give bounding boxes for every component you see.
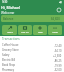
staticText: -32.00 [54,68,62,72]
staticText: ▴▮ [59,1,62,4]
staticText: -54.10 [54,49,62,53]
staticText: Grocery Store [2,48,19,52]
button[interactable]: Top up [18,25,32,35]
button[interactable]: Bills [33,25,47,35]
button[interactable]: Salary [0,53,64,58]
staticText: -12.40 [54,44,62,48]
button[interactable]: Balance [1,15,64,22]
staticText: Balance [3,17,14,21]
button[interactable]: Coffee House [0,43,64,48]
staticText: 9:30 [2,0,8,4]
staticText: Salary [2,53,10,57]
button[interactable]: Send [2,25,17,35]
staticText: Book Shop [2,63,16,67]
staticText: Electric Bill [2,58,16,62]
button[interactable]: Notifications [56,7,61,12]
staticText: Coffee House [2,43,19,47]
staticText: Bills [38,31,43,34]
staticText: More [52,31,58,34]
staticText: -86.25 [54,59,62,63]
staticText: Pharmacy [2,68,15,72]
staticText: Send [7,31,13,34]
staticText: Top up [21,31,29,34]
staticText: Welcome [1,11,15,15]
staticText: +2,300 [53,54,62,58]
staticText: Hi, Michael [1,5,20,10]
button[interactable]: Pharmacy [0,68,64,72]
button[interactable]: Electric Bill [0,58,64,63]
button[interactable]: More [48,25,62,35]
staticText: -19.99 [54,64,62,68]
staticText: $4,820 [51,17,60,21]
staticText: Transactions [2,37,20,41]
button[interactable]: Book Shop [0,63,64,68]
button[interactable]: Grocery Store [0,48,64,53]
